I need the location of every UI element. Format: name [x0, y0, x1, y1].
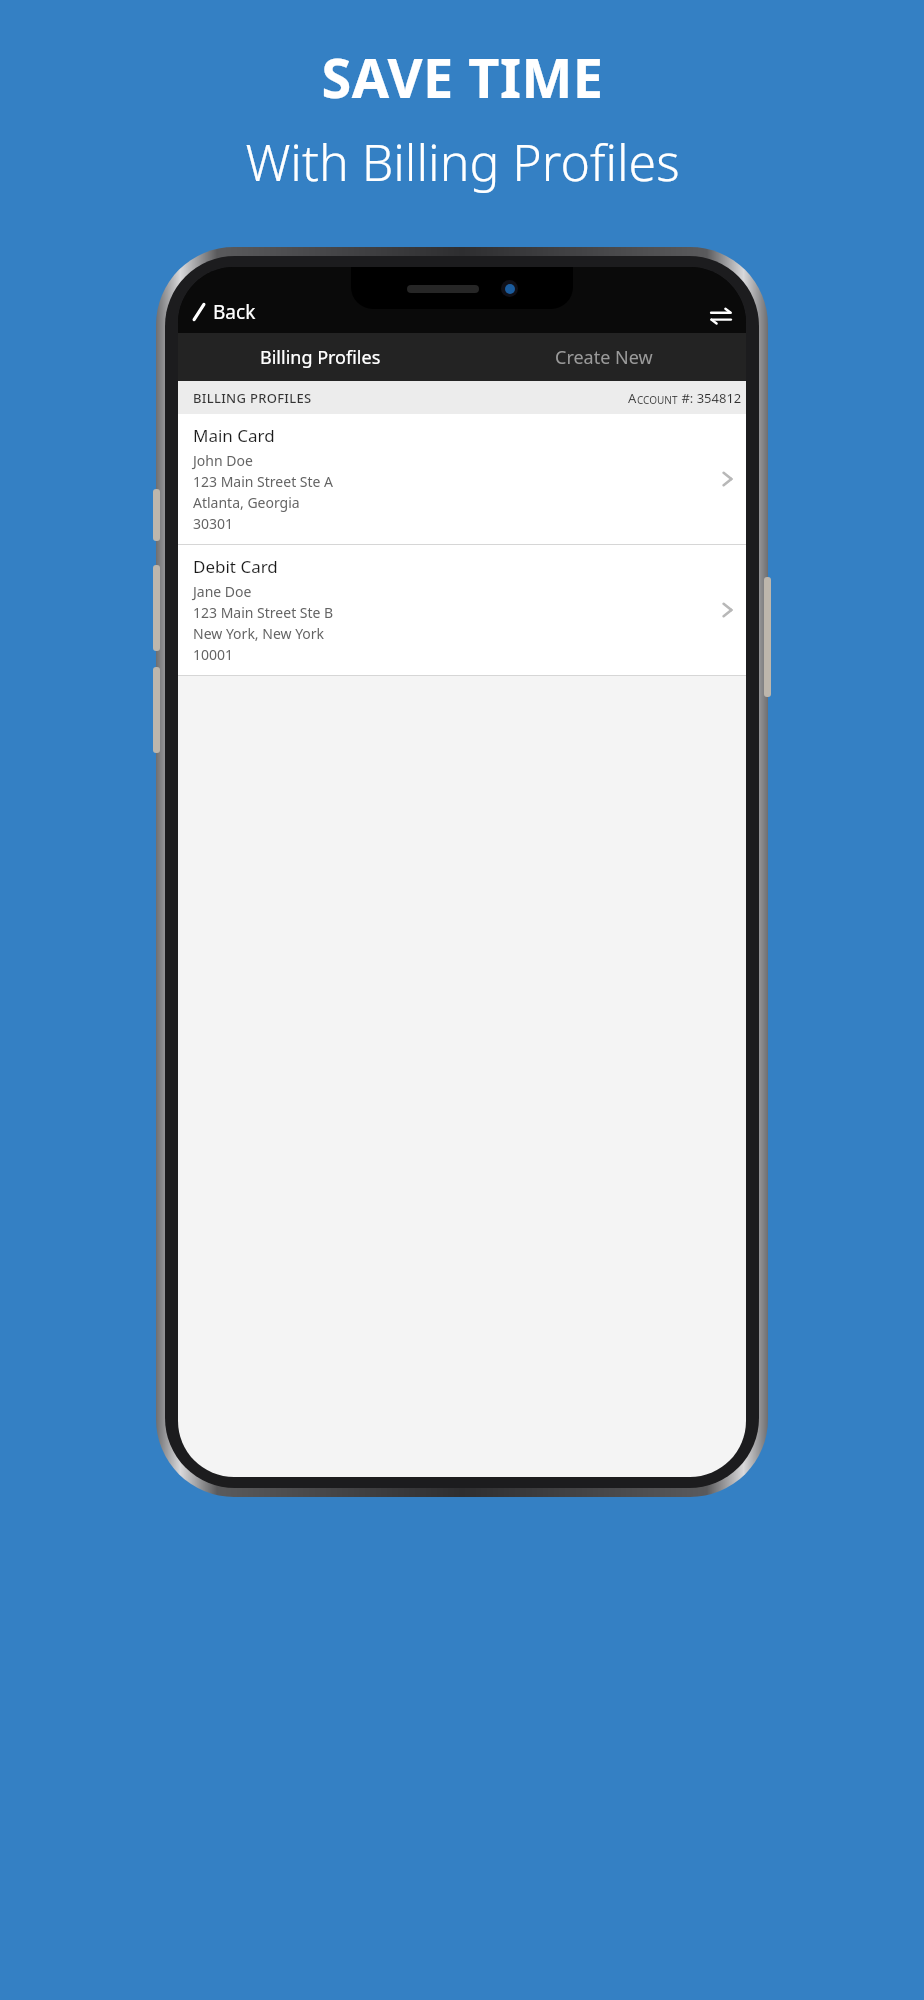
staticText: SAVE TIME	[321, 40, 604, 114]
button[interactable]: Create New	[462, 333, 746, 381]
staticText: CCOUNT	[637, 393, 678, 407]
staticText: 123 Main Street Ste A	[193, 472, 334, 491]
staticText: Back	[213, 299, 256, 325]
staticText: Create New	[555, 345, 653, 370]
staticText: 123 Main Street Ste B	[193, 603, 334, 622]
staticText: A	[628, 389, 637, 407]
staticText: Main Card	[193, 424, 275, 447]
staticText: 10001	[193, 645, 234, 664]
button[interactable]: Debit Card	[178, 545, 746, 675]
staticText: With Billing Profiles	[245, 128, 680, 196]
staticText: #: 354812	[678, 389, 742, 407]
staticText: Atlanta, Georgia	[193, 493, 300, 512]
staticText: Debit Card	[193, 555, 278, 578]
staticText: New York, New York	[193, 624, 325, 643]
button[interactable]: Back	[178, 293, 274, 333]
button[interactable]: Billing Profiles	[178, 333, 462, 381]
staticText: 30301	[193, 514, 234, 533]
staticText: Billing Profiles	[260, 345, 381, 370]
button[interactable]: Main Card	[178, 414, 746, 544]
button[interactable]: Sync	[696, 299, 746, 333]
staticText: John Doe	[193, 451, 253, 470]
staticText: Jane Doe	[193, 582, 252, 601]
staticText: BILLING PROFILES	[193, 389, 312, 407]
